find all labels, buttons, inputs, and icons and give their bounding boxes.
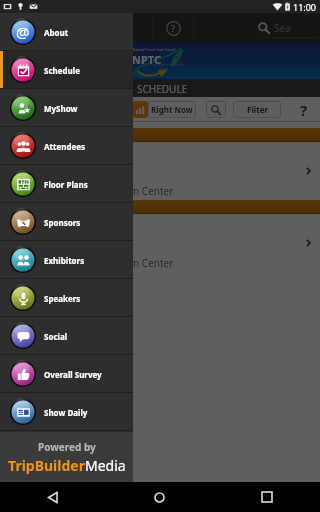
- button[interactable]: Help: [158, 13, 188, 43]
- staticText: 15: [174, 52, 187, 67]
- staticText: Floor Plans: [44, 179, 88, 190]
- staticText: Schedule: [44, 65, 80, 76]
- button[interactable]: Sea: [258, 13, 318, 43]
- staticText: Social: [44, 331, 68, 342]
- staticText: Sponsors: [44, 217, 81, 228]
- button[interactable]: Speakers: [0, 279, 133, 317]
- staticText: Filter: [247, 104, 268, 115]
- button[interactable]: Filter: [233, 101, 281, 118]
- staticText: SCHEDULE: [137, 82, 188, 96]
- button[interactable]: on Center: [0, 214, 320, 272]
- button[interactable]: @: [0, 13, 133, 51]
- button[interactable]: Overall Survey: [0, 355, 133, 393]
- staticText: Speakers: [44, 293, 81, 304]
- staticText: Media: [85, 456, 126, 475]
- staticText: Powered by: [38, 440, 96, 454]
- staticText: TripBuilder: [8, 456, 85, 475]
- button[interactable]: Recents: [213, 482, 320, 512]
- button[interactable]: Search: [206, 101, 226, 118]
- staticText: on Center: [127, 184, 174, 198]
- staticText: Attendees: [44, 141, 86, 152]
- staticText: NPTC: [132, 52, 161, 67]
- button[interactable]: Sponsors: [0, 203, 133, 241]
- button[interactable]: on Center: [0, 142, 320, 200]
- staticText: @: [16, 22, 30, 42]
- button[interactable]: Schedule: [0, 51, 133, 89]
- staticText: Right Now: [151, 104, 193, 115]
- button[interactable]: Social: [0, 317, 133, 355]
- staticText: on Center: [127, 256, 174, 270]
- staticText: Overall Survey: [44, 369, 102, 380]
- staticText: Exhibitors: [44, 255, 85, 266]
- button[interactable]: Back: [0, 482, 106, 512]
- staticText: National Private Truck Council: [133, 48, 176, 52]
- button[interactable]: Help: [288, 97, 320, 122]
- staticText: 11:00: [293, 1, 317, 13]
- staticText: You should feel privileged to drive: [144, 63, 184, 71]
- staticText: Show Daily: [44, 407, 88, 418]
- button[interactable]: MyShow: [0, 89, 133, 127]
- button[interactable]: Home: [106, 482, 213, 512]
- staticText: About: [44, 27, 69, 38]
- staticText: ?: [171, 22, 175, 34]
- staticText: Sea: [274, 21, 291, 35]
- button[interactable]: Floor Plans: [0, 165, 133, 203]
- button[interactable]: Right Now: [148, 101, 196, 118]
- button[interactable]: Exhibitors: [0, 241, 133, 279]
- staticText: ?: [300, 100, 308, 120]
- staticText: MyShow: [44, 103, 78, 114]
- button[interactable]: Show Daily: [0, 393, 133, 431]
- button[interactable]: Attendees: [0, 127, 133, 165]
- button[interactable]: Now: [133, 101, 148, 118]
